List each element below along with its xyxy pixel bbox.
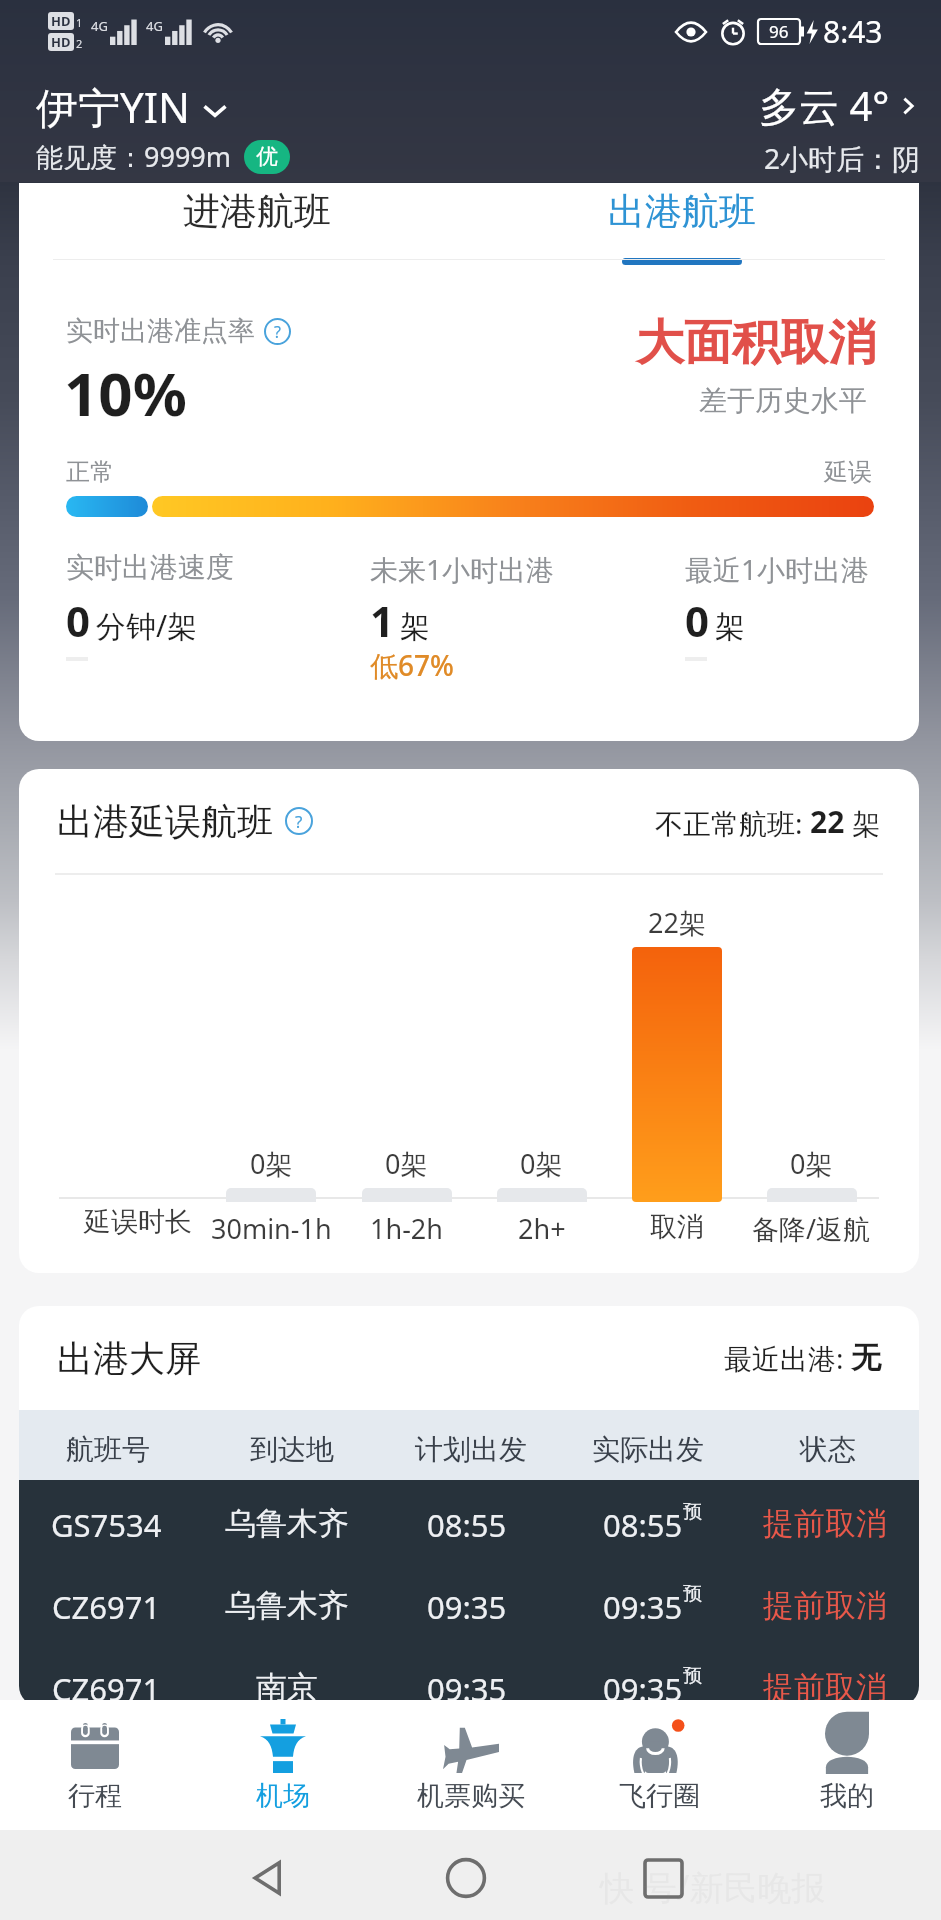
- staticText: 不正常航班:: [655, 804, 810, 842]
- staticText: 未来1小时出港: [370, 550, 555, 588]
- button[interactable]: 机票购买: [377, 1700, 565, 1830]
- staticText: 09:35: [603, 1668, 683, 1706]
- button[interactable]: 飞行圈: [565, 1700, 753, 1830]
- staticText: 2: [76, 36, 83, 51]
- staticText: 差于历史水平: [699, 383, 867, 418]
- staticText: 飞行圈: [619, 1779, 700, 1813]
- staticText: 分钟/架: [96, 605, 198, 646]
- staticText: 架: [715, 608, 745, 646]
- staticText: 0架: [250, 1145, 293, 1182]
- staticText: 预: [683, 1500, 702, 1524]
- staticText: 0: [685, 592, 710, 649]
- staticText: 乌鲁木齐: [225, 1504, 349, 1543]
- staticText: 备降/返航: [752, 1210, 871, 1247]
- staticText: 提前取消: [763, 1504, 887, 1543]
- staticText: 2h+: [518, 1210, 566, 1247]
- staticText: 22架: [648, 904, 706, 941]
- staticText: GS7534: [51, 1504, 162, 1546]
- staticText: 提前取消: [763, 1668, 887, 1706]
- staticText: 08:55: [427, 1504, 507, 1546]
- staticText: 22: [810, 801, 845, 842]
- staticText: 09:35: [603, 1586, 683, 1628]
- staticText: 30min-1h: [211, 1210, 332, 1247]
- staticText: 进港航班: [183, 188, 331, 235]
- staticText: 0架: [385, 1145, 428, 1182]
- staticText: HD: [51, 33, 71, 51]
- staticText: 无: [851, 1339, 881, 1377]
- staticText: 预: [683, 1664, 702, 1688]
- staticText: CZ6971: [52, 1586, 161, 1628]
- staticText: 2小时后：阴: [764, 139, 921, 177]
- staticText: ?: [274, 321, 281, 343]
- staticText: 实时出港速度: [66, 550, 234, 585]
- staticText: 实时出港准点率: [66, 314, 255, 348]
- staticText: 延误时长: [84, 1205, 192, 1239]
- staticText: 能见度：9999m: [36, 138, 232, 175]
- staticText: 1: [370, 592, 395, 649]
- staticText: 提前取消: [763, 1586, 887, 1625]
- staticText: 出港航班: [608, 188, 756, 235]
- staticText: 10%: [64, 352, 187, 434]
- staticText: 0: [66, 592, 91, 649]
- staticText: 机场: [256, 1779, 310, 1813]
- staticText: HD: [51, 12, 71, 30]
- staticText: 09:35: [427, 1668, 507, 1706]
- staticText: 96: [769, 20, 789, 43]
- staticText: CZ6971: [52, 1668, 161, 1706]
- staticText: 0架: [520, 1145, 563, 1182]
- staticText: 8:43: [823, 11, 883, 52]
- staticText: 架: [845, 804, 881, 842]
- staticText: 1: [76, 15, 83, 30]
- staticText: 架: [400, 608, 430, 646]
- staticText: 实际出发: [592, 1432, 704, 1467]
- button[interactable]: Back: [232, 1842, 304, 1914]
- staticText: 09:35: [427, 1586, 507, 1628]
- staticText: 出港大屏: [57, 1336, 201, 1381]
- button[interactable]: 进港航班: [159, 183, 355, 259]
- staticText: 出港延误航班: [57, 799, 273, 844]
- staticText: 低67%: [370, 646, 454, 684]
- staticText: 4G: [146, 17, 163, 35]
- button[interactable]: 机场: [189, 1700, 377, 1830]
- button[interactable]: 我的: [753, 1700, 941, 1830]
- staticText: 多云 4°: [759, 78, 890, 133]
- staticText: 大面积取消: [636, 313, 876, 373]
- staticText: 伊宁YIN: [36, 78, 190, 135]
- staticText: 优: [256, 143, 278, 171]
- staticText: ?: [295, 810, 303, 833]
- button[interactable]: Recents: [627, 1842, 699, 1914]
- staticText: 08:55: [603, 1504, 683, 1546]
- button[interactable]: 出港航班: [584, 183, 780, 259]
- staticText: 0架: [790, 1145, 833, 1182]
- staticText: 到达地: [250, 1432, 334, 1467]
- staticText: 状态: [800, 1432, 856, 1467]
- staticText: 机票购买: [417, 1779, 525, 1813]
- staticText: 4G: [91, 17, 108, 35]
- staticText: 航班号: [66, 1432, 150, 1467]
- button[interactable]: Home: [430, 1842, 502, 1914]
- staticText: 正常: [66, 457, 114, 487]
- staticText: 预: [683, 1582, 702, 1606]
- staticText: 快 号/新民晚报: [600, 1864, 826, 1910]
- button[interactable]: 行程: [0, 1700, 189, 1830]
- staticText: 最近1小时出港: [685, 550, 870, 588]
- staticText: 1h-2h: [370, 1210, 443, 1247]
- staticText: 我的: [820, 1779, 874, 1813]
- staticText: 最近出港:: [724, 1339, 851, 1377]
- staticText: 南京: [256, 1668, 318, 1706]
- staticText: 乌鲁木齐: [225, 1586, 349, 1625]
- staticText: 延误: [824, 457, 872, 487]
- staticText: 取消: [650, 1210, 704, 1244]
- staticText: 行程: [68, 1779, 122, 1813]
- staticText: 计划出发: [415, 1432, 527, 1467]
